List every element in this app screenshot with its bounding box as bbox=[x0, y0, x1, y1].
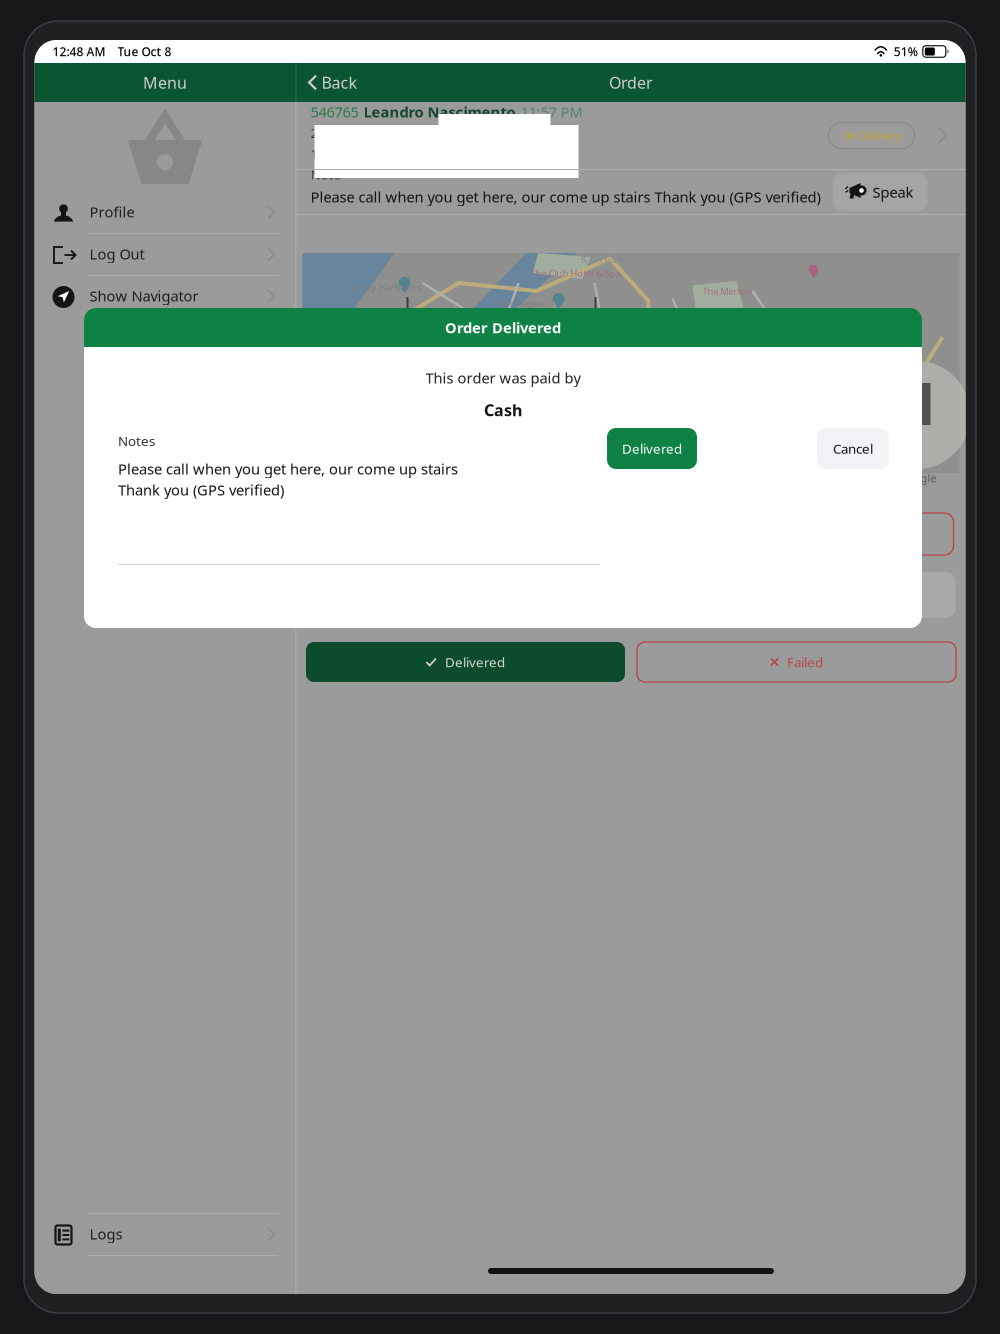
button[interactable]: Logs bbox=[34, 1214, 295, 1255]
staticText: Note bbox=[310, 165, 341, 183]
staticText: Profile bbox=[89, 202, 134, 221]
staticText: Jersey Harbours bbox=[350, 281, 420, 293]
staticText: Thank you (GPS verified) bbox=[118, 480, 284, 499]
staticText: The Merton bbox=[702, 285, 752, 297]
staticText: Menu bbox=[143, 72, 187, 93]
staticText: Cash bbox=[484, 399, 522, 421]
staticText: 51% bbox=[894, 43, 918, 59]
staticText: 2 Marett Court bbox=[310, 124, 401, 142]
staticText: Cancel bbox=[833, 440, 873, 457]
staticText: Order bbox=[609, 72, 653, 93]
staticText: 11:57 PM bbox=[520, 102, 582, 121]
staticText: Log Out bbox=[89, 244, 144, 263]
staticText: 111 Marett Court bbox=[414, 303, 521, 321]
staticText: Please call when you get here, our come … bbox=[118, 459, 458, 478]
staticText: Back bbox=[321, 72, 357, 93]
staticText: Notes bbox=[118, 432, 155, 450]
staticText: Delivered bbox=[445, 653, 505, 671]
button[interactable]: Profile bbox=[34, 192, 295, 233]
button[interactable]: Failed bbox=[637, 642, 956, 682]
staticText: Tue Oct 8 bbox=[117, 43, 171, 59]
staticText: Failed bbox=[787, 653, 823, 671]
button[interactable]: Cancel bbox=[817, 428, 889, 469]
staticText: 546765 bbox=[310, 102, 358, 121]
staticText: 1 Saint Helier bbox=[310, 145, 392, 162]
staticText: Speak bbox=[872, 182, 913, 202]
button[interactable]: Menu bbox=[34, 63, 295, 102]
button[interactable]: Delivered bbox=[607, 428, 697, 469]
staticText: Logs bbox=[89, 1224, 122, 1243]
staticText: Fort Regent bbox=[494, 297, 545, 309]
staticText: Google bbox=[900, 471, 936, 485]
staticText: On Delivery bbox=[842, 128, 900, 143]
staticText: Please call when you get here, our come … bbox=[310, 187, 820, 206]
button[interactable]: Show Navigator bbox=[34, 276, 295, 317]
staticText: 12:48 AM bbox=[52, 43, 105, 59]
button[interactable]: Delivered bbox=[306, 642, 625, 682]
button[interactable]: Log Out bbox=[34, 234, 295, 275]
button[interactable]: Back bbox=[296, 63, 368, 102]
staticText: This order was paid by bbox=[425, 368, 580, 387]
button[interactable]: Navigate bbox=[306, 572, 955, 618]
staticText: & Art Gallery bbox=[580, 253, 634, 265]
button[interactable]: Speak bbox=[833, 173, 927, 210]
button[interactable]: Call Customer bbox=[308, 513, 953, 555]
staticText: Order Delivered bbox=[445, 318, 561, 337]
staticText: Delivered bbox=[622, 440, 682, 457]
staticText: Show Navigator bbox=[89, 286, 198, 305]
staticText: The Club Hotel & Spa bbox=[530, 267, 620, 279]
staticText: Leandro Nascimento bbox=[363, 102, 515, 121]
